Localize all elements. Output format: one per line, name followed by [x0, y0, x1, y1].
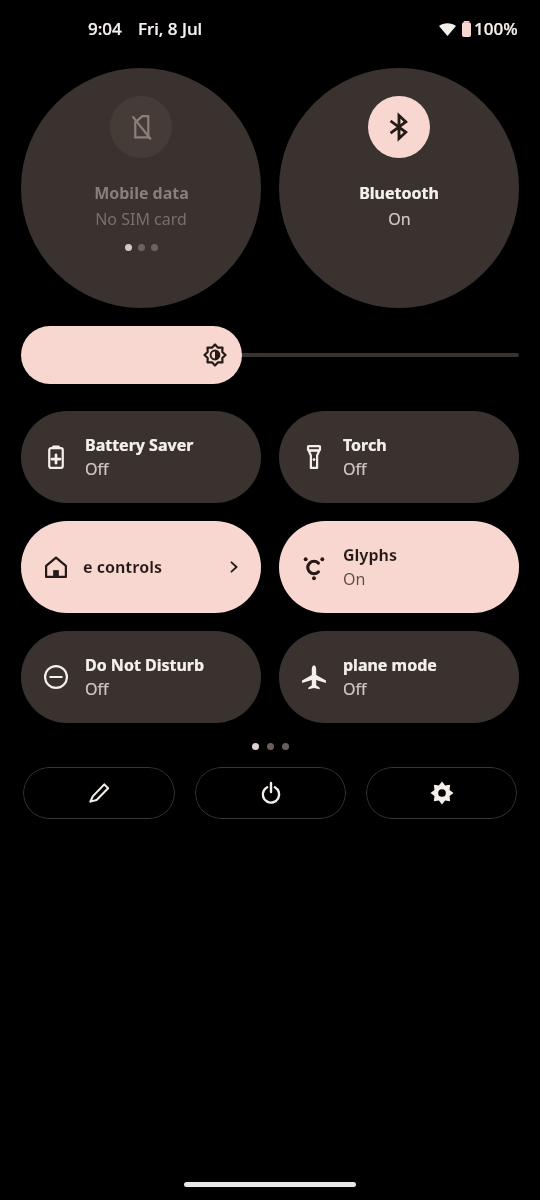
- button[interactable]: e controls: [21, 521, 261, 613]
- button[interactable]: Glyphs: [279, 521, 519, 613]
- staticText: Off: [85, 458, 109, 480]
- staticText: e controls: [83, 556, 162, 578]
- button[interactable]: Settings: [366, 767, 517, 819]
- staticText: Glyphs: [343, 544, 398, 566]
- staticText: Do Not Disturb: [85, 654, 205, 676]
- staticText: 9:04: [88, 17, 122, 40]
- button[interactable]: Bluetooth: [279, 68, 519, 308]
- button[interactable]: plane mode: [279, 631, 519, 723]
- button[interactable]: Do Not Disturb: [21, 631, 261, 723]
- button[interactable]: Edit: [23, 767, 175, 819]
- staticText: Torch: [343, 434, 387, 456]
- staticText: Battery Saver: [85, 434, 194, 456]
- staticText: plane mode: [343, 654, 437, 676]
- staticText: Off: [85, 678, 109, 700]
- staticText: Mobile data: [94, 182, 189, 204]
- button[interactable]: Mobile data: [21, 68, 261, 308]
- staticText: Off: [343, 458, 367, 480]
- button[interactable]: Battery Saver: [21, 411, 261, 503]
- staticText: Bluetooth: [359, 182, 439, 204]
- button[interactable]: Torch: [279, 411, 519, 503]
- staticText: Off: [343, 678, 367, 700]
- staticText: On: [343, 568, 366, 590]
- staticText: 100%: [474, 17, 518, 40]
- staticText: On: [388, 208, 411, 230]
- staticText: Fri, 8 Jul: [138, 17, 203, 40]
- button[interactable]: Power: [195, 767, 346, 819]
- button[interactable]: Brightness: [21, 326, 519, 384]
- staticText: No SIM card: [95, 208, 187, 230]
